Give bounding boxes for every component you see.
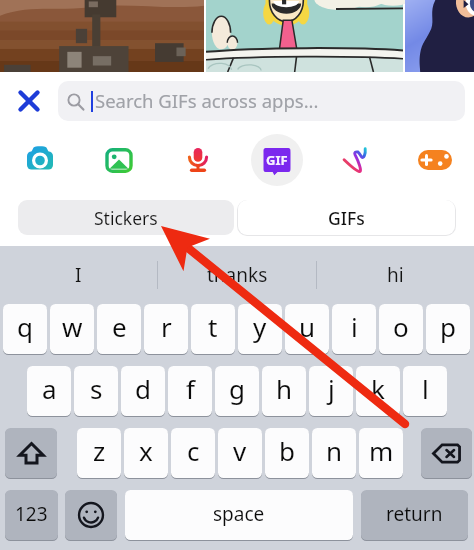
button[interactable]: d bbox=[121, 366, 165, 416]
button[interactable]: f bbox=[168, 366, 212, 416]
button[interactable]: g bbox=[215, 366, 259, 416]
button[interactable] bbox=[405, 0, 474, 72]
staticText: u bbox=[299, 309, 316, 344]
button[interactable]: space bbox=[125, 490, 353, 540]
button[interactable]: w bbox=[50, 304, 94, 354]
button[interactable]: i bbox=[332, 304, 376, 354]
staticText: I bbox=[75, 262, 82, 288]
staticText: z bbox=[93, 433, 106, 468]
button[interactable]: a bbox=[27, 366, 71, 416]
button[interactable] bbox=[206, 0, 403, 72]
staticText: i bbox=[351, 309, 358, 344]
staticText: Search GIFs across apps... bbox=[95, 88, 319, 113]
button[interactable]: p bbox=[426, 304, 470, 354]
staticText: t bbox=[208, 309, 218, 344]
staticText: h bbox=[276, 371, 293, 406]
staticText: v bbox=[233, 433, 247, 468]
staticText: x bbox=[139, 433, 153, 468]
staticText: w bbox=[62, 309, 83, 344]
staticText: g bbox=[229, 371, 245, 406]
staticText: Stickers bbox=[94, 206, 158, 230]
button[interactable]: GIFs bbox=[238, 200, 455, 235]
staticText: GIFs bbox=[328, 206, 365, 230]
button[interactable]: t bbox=[191, 304, 235, 354]
button[interactable]: hi bbox=[317, 246, 474, 304]
button[interactable]: c bbox=[171, 428, 215, 478]
staticText: p bbox=[440, 309, 456, 344]
button[interactable]: Close bbox=[9, 81, 49, 121]
button[interactable]: I bbox=[0, 246, 157, 304]
staticText: a bbox=[42, 371, 57, 406]
staticText: GIF bbox=[266, 151, 288, 169]
button[interactable]: e bbox=[97, 304, 141, 354]
button[interactable]: 123 bbox=[5, 490, 58, 540]
button[interactable]: v bbox=[218, 428, 262, 478]
button[interactable]: n bbox=[312, 428, 356, 478]
staticText: thanks bbox=[207, 262, 268, 288]
staticText: k bbox=[371, 371, 385, 406]
button[interactable]: Photos bbox=[79, 130, 158, 190]
button[interactable]: s bbox=[74, 366, 118, 416]
staticText: space bbox=[213, 501, 265, 527]
staticText: y bbox=[253, 309, 267, 344]
button[interactable]: r bbox=[144, 304, 188, 354]
button[interactable]: z bbox=[77, 428, 121, 478]
staticText: s bbox=[90, 371, 103, 406]
button[interactable]: k bbox=[356, 366, 400, 416]
staticText: q bbox=[17, 309, 33, 344]
button[interactable]: Emoji bbox=[65, 490, 117, 540]
button[interactable]: x bbox=[124, 428, 168, 478]
button[interactable]: Digital Touch bbox=[316, 130, 395, 190]
staticText: l bbox=[422, 371, 429, 406]
staticText: n bbox=[326, 433, 343, 468]
button[interactable]: Camera bbox=[0, 130, 79, 190]
button[interactable]: q bbox=[3, 304, 47, 354]
staticText: f bbox=[186, 371, 195, 406]
button[interactable]: Stickers bbox=[18, 200, 234, 235]
staticText: j bbox=[328, 371, 335, 406]
button[interactable]: y bbox=[238, 304, 282, 354]
staticText: r bbox=[161, 309, 172, 344]
button[interactable]: Audio message bbox=[158, 130, 237, 190]
button[interactable]: u bbox=[285, 304, 329, 354]
button[interactable]: GIF keyboard bbox=[237, 130, 316, 190]
button[interactable]: m bbox=[359, 428, 403, 478]
staticText: d bbox=[135, 371, 151, 406]
staticText: e bbox=[112, 309, 127, 344]
staticText: return bbox=[386, 501, 443, 527]
staticText: hi bbox=[387, 262, 404, 288]
staticText: c bbox=[187, 433, 200, 468]
button[interactable]: Search GIFs across apps... bbox=[58, 81, 465, 121]
button[interactable]: l bbox=[403, 366, 447, 416]
button[interactable]: o bbox=[379, 304, 423, 354]
button[interactable]: Backspace bbox=[421, 428, 472, 478]
button[interactable]: b bbox=[265, 428, 309, 478]
button[interactable]: return bbox=[361, 490, 468, 540]
button[interactable]: h bbox=[262, 366, 306, 416]
staticText: m bbox=[369, 433, 394, 468]
button[interactable]: thanks bbox=[158, 246, 316, 304]
staticText: o bbox=[393, 309, 409, 344]
staticText: 123 bbox=[15, 501, 48, 527]
button[interactable] bbox=[0, 0, 204, 72]
staticText: b bbox=[279, 433, 295, 468]
button[interactable]: j bbox=[309, 366, 353, 416]
button[interactable]: Shift bbox=[5, 428, 57, 478]
button[interactable]: Game Pigeon bbox=[395, 130, 474, 190]
